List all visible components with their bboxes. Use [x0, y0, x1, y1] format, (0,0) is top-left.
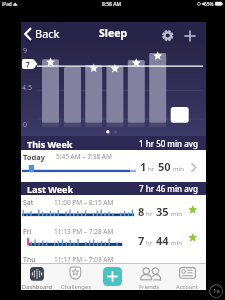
- staticText: 35: [156, 204, 169, 219]
- staticText: 1: [140, 159, 147, 174]
- button[interactable]: [161, 29, 174, 42]
- staticText: hr: [146, 239, 153, 247]
- staticText: Thu: [23, 255, 36, 264]
- staticText: min: [173, 165, 184, 173]
- staticText: 1x: [213, 287, 220, 295]
- staticText: hr: [146, 210, 153, 218]
- staticText: Sleep: [99, 26, 128, 40]
- staticText: min: [171, 239, 182, 247]
- staticText: 8:58 AM: [102, 1, 122, 8]
- staticText: 9: [23, 46, 28, 56]
- staticText: 7 hr 46 min avg: [139, 183, 198, 194]
- staticText: Account: [176, 283, 199, 290]
- staticText: min: [171, 210, 182, 218]
- button[interactable]: Back: [24, 26, 60, 41]
- button[interactable]: 1x: [209, 284, 223, 298]
- button[interactable]: Today: [21, 150, 206, 182]
- staticText: Fri: [23, 227, 32, 237]
- staticText: 7: [138, 233, 145, 248]
- button[interactable]: Fri: [21, 225, 206, 252]
- button[interactable]: Dashboard: [21, 264, 54, 290]
- staticText: Last Week: [27, 183, 74, 195]
- staticText: Friends: [139, 283, 160, 290]
- button[interactable]: Friends: [133, 264, 166, 290]
- staticText: 5:45 AM – 7:38 AM: [56, 152, 112, 161]
- staticText: Sat: [23, 198, 34, 208]
- staticText: 11:00 PM – 8:15 AM: [54, 198, 114, 207]
- staticText: 8: [138, 204, 145, 219]
- staticText: 1 hr 50 min avg: [139, 138, 198, 149]
- staticText: 0: [23, 120, 28, 130]
- staticText: 65%: [204, 1, 214, 8]
- button[interactable]: [184, 30, 196, 42]
- button[interactable]: Sat: [21, 195, 206, 225]
- button[interactable]: Challenges: [57, 264, 94, 290]
- staticText: Dashboard: [22, 283, 53, 290]
- staticText: 11:13 PM – 7:28 AM: [54, 227, 114, 236]
- staticText: hr: [148, 165, 155, 173]
- staticText: 7: [26, 60, 30, 69]
- staticText: 11:17 PM – 7:03 AM: [54, 255, 114, 264]
- button[interactable]: Account: [170, 264, 205, 290]
- button[interactable]: [103, 267, 122, 286]
- staticText: Back: [35, 26, 60, 41]
- staticText: 44: [156, 233, 169, 248]
- staticText: This Week: [27, 138, 73, 150]
- staticText: 4.5: [22, 83, 32, 93]
- staticText: iPad: [2, 1, 12, 8]
- button[interactable]: Thu: [21, 253, 206, 262]
- staticText: Challenges: [61, 283, 91, 290]
- staticText: 50: [158, 159, 171, 174]
- staticText: Today: [23, 152, 46, 162]
